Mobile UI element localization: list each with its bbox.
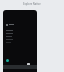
- button[interactable]: Action: [6, 59, 9, 62]
- staticText: Explore Native: [23, 2, 41, 6]
- button[interactable]: Open: [27, 63, 30, 66]
